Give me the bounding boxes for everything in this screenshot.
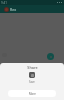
staticText: More <box>29 92 36 96</box>
staticText: Rex <box>10 7 17 12</box>
button[interactable]: More <box>8 90 56 97</box>
button[interactable]: Add <box>47 53 54 60</box>
staticText: Save <box>29 80 35 84</box>
staticText: 9:41 <box>1 1 7 5</box>
button[interactable]: Save <box>29 72 35 84</box>
staticText: Share <box>27 65 38 70</box>
